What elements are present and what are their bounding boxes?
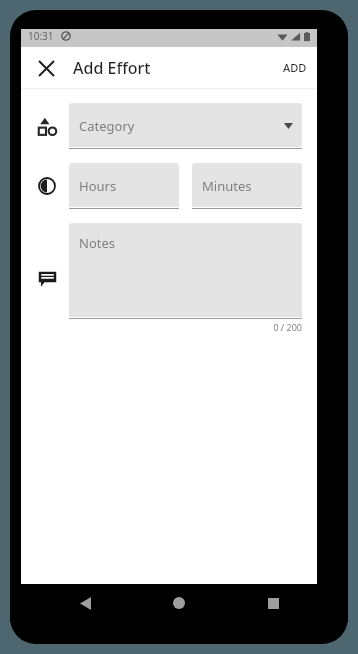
staticText: 0 / 200 xyxy=(69,321,302,333)
button[interactable]: Notes xyxy=(69,223,302,319)
other: Category xyxy=(38,117,57,136)
staticText: 10:31 xyxy=(28,29,54,43)
staticText: Notes xyxy=(79,234,115,252)
other: Notes xyxy=(38,269,57,288)
button[interactable]: Recent apps xyxy=(254,584,292,622)
button[interactable]: Back xyxy=(66,584,104,622)
button[interactable]: Minutes xyxy=(192,163,302,209)
staticText: ADD xyxy=(283,60,307,75)
button[interactable]: Hours xyxy=(69,163,179,209)
staticText: Minutes xyxy=(202,177,252,195)
button[interactable]: Category xyxy=(69,103,302,149)
staticText: Add Effort xyxy=(73,57,151,79)
button[interactable]: Home xyxy=(160,584,198,622)
staticText: Category xyxy=(79,117,135,135)
staticText: Hours xyxy=(79,177,117,195)
button[interactable]: Close xyxy=(29,51,63,85)
other: Duration xyxy=(38,177,56,195)
button[interactable]: ADD xyxy=(273,54,317,81)
